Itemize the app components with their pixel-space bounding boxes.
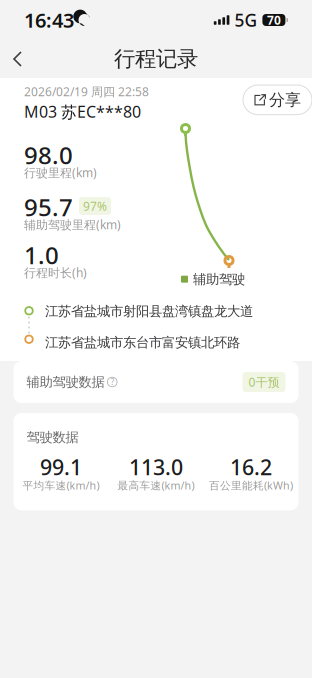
staticText: 平均车速(km/h) [22, 478, 99, 492]
staticText: 0干预 [248, 374, 279, 390]
staticText: 1.0 [24, 239, 59, 271]
staticText: 99.1 [40, 453, 82, 481]
button[interactable]: 返回 [0, 41, 35, 76]
staticText: 辅助驾驶 [193, 271, 245, 287]
staticText: 辅助驾驶数据 [26, 374, 104, 390]
staticText: 驾驶数据 [26, 429, 78, 445]
staticText: 95.7 [24, 191, 73, 223]
staticText: 16.2 [230, 453, 272, 481]
staticText: 行驶里程(km) [24, 164, 97, 180]
staticText: 16:43 [24, 7, 74, 33]
staticText: 98.0 [24, 139, 73, 171]
staticText: 分享 [269, 90, 301, 110]
staticText: 江苏省盐城市东台市富安镇北环路 [45, 334, 240, 351]
staticText: 70 [267, 12, 281, 28]
staticText: 辅助驾驶里程(km) [24, 216, 121, 232]
staticText: 113.0 [129, 453, 183, 481]
button[interactable]: 分享 [243, 85, 312, 115]
staticText: M03 苏EC***80 [24, 101, 141, 122]
staticText: ? [111, 377, 114, 387]
staticText: 行程时长(h) [24, 264, 87, 280]
staticText: 5G [234, 8, 257, 31]
staticText: 行程记录 [114, 46, 198, 72]
staticText: 97% [83, 198, 107, 214]
staticText: 江苏省盐城市射阳县盘湾镇盘龙大道 [45, 303, 253, 319]
staticText: 百公里能耗(kWh) [209, 478, 293, 492]
staticText: 2026/02/19 周四 22:58 [24, 83, 149, 99]
staticText: 最高车速(km/h) [117, 478, 194, 492]
